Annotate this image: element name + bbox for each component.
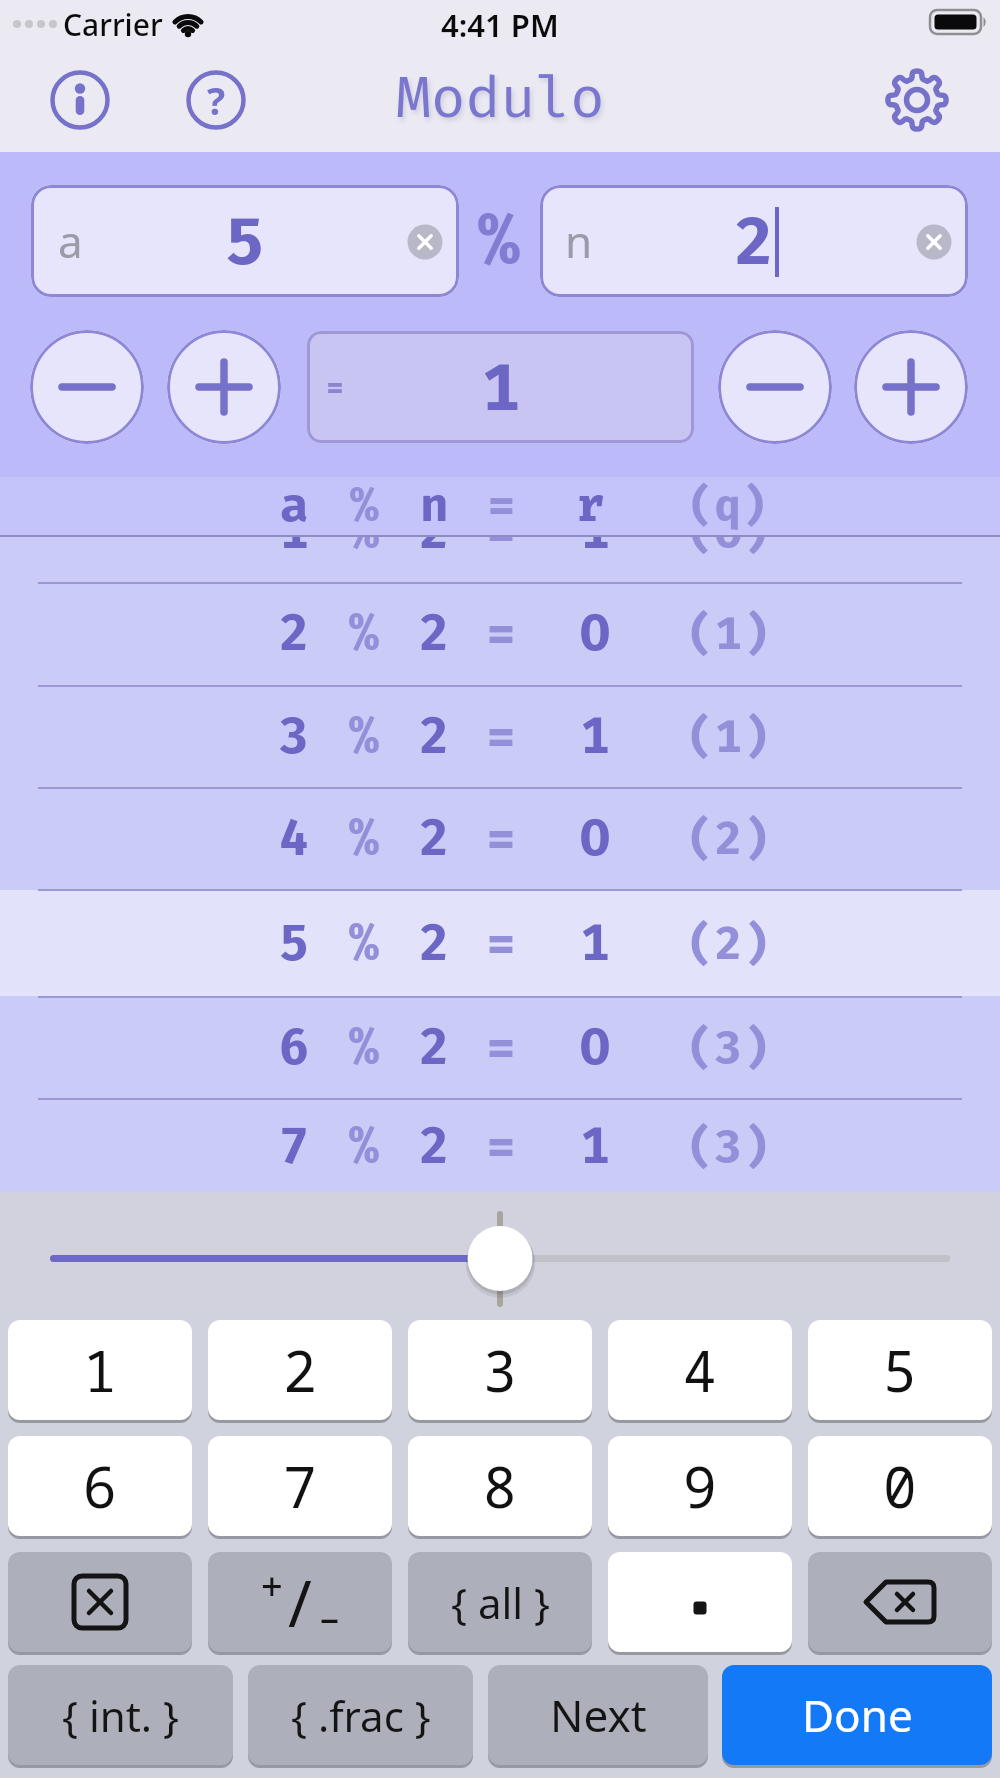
staticText: 2 (419, 1116, 449, 1176)
button[interactable]: + (208, 1552, 392, 1652)
staticText: = (486, 1017, 516, 1077)
button[interactable] (0, 582, 1000, 684)
button[interactable]: { all } (408, 1552, 592, 1652)
button[interactable]: 7 (208, 1436, 392, 1536)
staticText: % (478, 199, 520, 283)
button[interactable]: 6 (8, 1436, 192, 1536)
staticText: 1 (580, 1116, 610, 1176)
button[interactable] (30, 330, 144, 444)
staticText: % (349, 1116, 379, 1176)
staticText: (3) (687, 1020, 770, 1075)
staticText: – (320, 1591, 340, 1641)
button[interactable] (0, 1095, 1000, 1192)
staticText: n (420, 477, 449, 534)
staticText: Carrier (63, 4, 163, 44)
button[interactable]: 5 (808, 1320, 992, 1420)
button[interactable]: 3 (408, 1320, 592, 1420)
button[interactable] (608, 1552, 792, 1652)
staticText: (2) (687, 916, 770, 971)
staticText: 2 (419, 913, 449, 973)
staticText: % (349, 913, 379, 973)
staticText: 1 (83, 1332, 117, 1408)
button[interactable]: a (31, 185, 459, 297)
button[interactable] (8, 1552, 192, 1652)
button[interactable]: 2 (208, 1320, 392, 1420)
staticText: 1 (580, 913, 610, 973)
staticText: = (326, 369, 344, 405)
button[interactable] (718, 330, 832, 444)
staticText: % (349, 501, 379, 561)
staticText: 2 (279, 603, 309, 663)
staticText: 5 (225, 202, 265, 281)
staticText: = (486, 913, 516, 973)
staticText: 9 (683, 1448, 717, 1524)
staticText: (2) (687, 811, 770, 866)
staticText: 4 (683, 1332, 717, 1408)
staticText: 1 (580, 501, 610, 561)
staticText: 8 (483, 1448, 517, 1524)
staticText: = (486, 1116, 516, 1176)
staticText: 6 (83, 1448, 117, 1524)
staticText: / (288, 1559, 312, 1646)
staticText: % (349, 1017, 379, 1077)
staticText: = (486, 808, 516, 868)
button[interactable]: ? (182, 66, 250, 134)
staticText: = (486, 603, 516, 663)
staticText: (O) (687, 504, 770, 559)
button[interactable] (167, 330, 281, 444)
staticText: 4 (279, 808, 309, 868)
staticText: a (280, 477, 309, 534)
staticText: 3 (483, 1332, 517, 1408)
staticText: O (580, 1017, 610, 1077)
staticText: (3) (687, 1119, 770, 1174)
staticText: 1 (279, 501, 309, 561)
button[interactable]: { int. } (8, 1665, 233, 1765)
button[interactable] (0, 685, 1000, 787)
button[interactable] (0, 892, 1000, 994)
staticText: 2 (419, 501, 449, 561)
staticText: ? (207, 74, 226, 126)
button[interactable]: 0 (808, 1436, 992, 1536)
staticText: { int. } (62, 1687, 179, 1744)
button[interactable] (46, 66, 114, 134)
staticText: 6 (279, 1017, 309, 1077)
staticText: % (349, 808, 379, 868)
staticText: 3 (279, 706, 309, 766)
button[interactable]: { .frac } (248, 1665, 473, 1765)
button[interactable] (0, 787, 1000, 889)
staticText: = (486, 706, 516, 766)
staticText: 2 (419, 1017, 449, 1077)
button[interactable] (0, 480, 1000, 582)
staticText: n (565, 211, 593, 271)
staticText: a (58, 211, 83, 271)
button[interactable]: n (540, 185, 968, 297)
button[interactable]: 9 (608, 1436, 792, 1536)
button[interactable] (460, 1219, 540, 1299)
staticText: Modulo (396, 63, 605, 133)
button[interactable]: Next (488, 1665, 708, 1765)
staticText: 1 (481, 348, 521, 427)
staticText: % (349, 706, 379, 766)
staticText: 2 (283, 1332, 317, 1408)
button[interactable] (808, 1552, 992, 1652)
staticText: = (486, 501, 516, 561)
staticText: (1) (687, 606, 770, 661)
staticText: 2 (419, 706, 449, 766)
staticText: 2 (419, 603, 449, 663)
button[interactable] (883, 66, 951, 134)
button[interactable]: 4 (608, 1320, 792, 1420)
staticText: 2 (419, 808, 449, 868)
staticText: 0 (883, 1448, 917, 1524)
staticText: Done (802, 1685, 913, 1745)
button[interactable] (854, 330, 968, 444)
button[interactable]: 1 (8, 1320, 192, 1420)
staticText: 5 (279, 913, 309, 973)
staticText: (q) (688, 479, 768, 532)
staticText: 7 (283, 1448, 317, 1524)
staticText: 1 (580, 706, 610, 766)
button[interactable]: 8 (408, 1436, 592, 1536)
staticText: % (350, 477, 379, 534)
staticText: 5 (883, 1332, 917, 1408)
button[interactable]: Done (722, 1665, 992, 1765)
button[interactable] (0, 996, 1000, 1098)
